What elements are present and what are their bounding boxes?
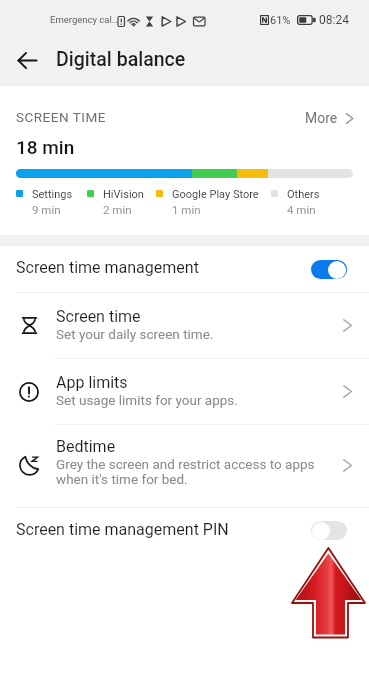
- staticText: 9 min: [32, 203, 61, 216]
- button[interactable]: Bedtime: [0, 424, 369, 507]
- staticText: Bedtime: [56, 437, 116, 456]
- staticText: HiVision: [103, 188, 144, 201]
- staticText: Settings: [32, 188, 73, 201]
- staticText: Digital balance: [56, 48, 186, 71]
- staticText: Grey the screen and restrict access to a…: [56, 456, 315, 488]
- staticText: 4 min: [287, 203, 316, 216]
- button[interactable]: App limits: [0, 358, 369, 425]
- staticText: Google Play Store: [172, 188, 259, 201]
- staticText: Others: [287, 188, 320, 201]
- staticText: SCREEN TIME: [16, 109, 106, 125]
- staticText: Set your daily screen time.: [56, 326, 214, 342]
- button[interactable]: Screen time management: [0, 246, 369, 292]
- staticText: Screen time: [56, 307, 141, 326]
- staticText: 61%: [270, 14, 291, 27]
- staticText: App limits: [56, 373, 128, 392]
- button[interactable]: Screen time: [0, 292, 369, 358]
- staticText: 08:24: [319, 13, 349, 27]
- staticText: Set usage limits for your apps.: [56, 392, 238, 408]
- staticText: Screen time management PIN: [16, 520, 229, 539]
- button[interactable]: Back: [3, 36, 51, 84]
- staticText: More: [305, 110, 338, 126]
- button[interactable]: More: [305, 110, 355, 126]
- button[interactable]: Screen time management PIN: [0, 507, 369, 552]
- staticText: Screen time management: [16, 258, 199, 277]
- staticText: 2 min: [103, 203, 132, 216]
- staticText: Emergency cal…: [50, 14, 119, 25]
- staticText: 1 min: [172, 203, 201, 216]
- staticText: 18 min: [16, 136, 75, 158]
